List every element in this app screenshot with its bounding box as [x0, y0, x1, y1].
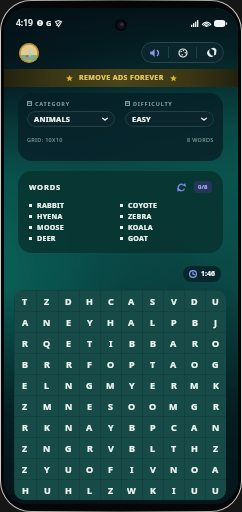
- button[interactable]: M: [163, 395, 184, 416]
- button[interactable]: C: [100, 290, 121, 311]
- button[interactable]: 1:46: [183, 266, 221, 282]
- button[interactable]: H: [79, 290, 100, 311]
- button[interactable]: P: [142, 416, 163, 437]
- button[interactable]: Z: [100, 479, 121, 500]
- button[interactable]: B: [142, 332, 163, 353]
- button[interactable]: Dark mode: [197, 42, 224, 63]
- button[interactable]: W: [121, 479, 142, 500]
- button[interactable]: Profile: [19, 43, 39, 63]
- button[interactable]: A: [121, 311, 142, 332]
- button[interactable]: R: [14, 332, 36, 353]
- button[interactable]: Q: [36, 332, 58, 353]
- button[interactable]: N: [58, 374, 79, 395]
- button[interactable]: A: [163, 332, 184, 353]
- button[interactable]: A: [79, 416, 100, 437]
- button[interactable]: B: [184, 311, 205, 332]
- button[interactable]: Theme: [169, 42, 196, 63]
- button[interactable]: H: [58, 479, 79, 500]
- button[interactable]: Y: [121, 374, 142, 395]
- button[interactable]: P: [121, 353, 142, 374]
- button[interactable]: B: [121, 332, 142, 353]
- button[interactable]: I: [121, 458, 142, 479]
- button[interactable]: U: [58, 458, 79, 479]
- button[interactable]: O: [100, 353, 121, 374]
- button[interactable]: A: [184, 416, 205, 437]
- button[interactable]: S: [100, 395, 121, 416]
- button[interactable]: B: [121, 416, 142, 437]
- button[interactable]: R: [163, 374, 184, 395]
- button[interactable]: Y: [36, 458, 58, 479]
- button[interactable]: G: [79, 374, 100, 395]
- button[interactable]: L: [79, 479, 100, 500]
- button[interactable]: V: [100, 437, 121, 458]
- button[interactable]: U: [36, 479, 58, 500]
- button[interactable]: EASY: [125, 111, 214, 127]
- button[interactable]: Z: [36, 290, 58, 311]
- button[interactable]: A: [205, 458, 226, 479]
- button[interactable]: ANIMALS: [27, 111, 115, 127]
- button[interactable]: T: [142, 353, 163, 374]
- button[interactable]: R: [58, 353, 79, 374]
- button[interactable]: G: [205, 353, 226, 374]
- button[interactable]: K: [205, 374, 226, 395]
- button[interactable]: E: [58, 311, 79, 332]
- button[interactable]: A: [121, 290, 142, 311]
- button[interactable]: MOOSE: [29, 222, 120, 233]
- button[interactable]: K: [36, 416, 58, 437]
- button[interactable]: F: [100, 458, 121, 479]
- button[interactable]: U: [184, 479, 205, 500]
- button[interactable]: G: [58, 437, 79, 458]
- button[interactable]: F: [79, 353, 100, 374]
- button[interactable]: N: [163, 458, 184, 479]
- button[interactable]: O: [121, 395, 142, 416]
- button[interactable]: V: [163, 290, 184, 311]
- button[interactable]: R: [36, 353, 58, 374]
- button[interactable]: R: [205, 395, 226, 416]
- button[interactable]: Z: [14, 458, 36, 479]
- button[interactable]: Shuffle words: [175, 181, 187, 193]
- button[interactable]: N: [205, 416, 226, 437]
- button[interactable]: I: [163, 479, 184, 500]
- button[interactable]: DEER: [29, 233, 120, 244]
- button[interactable]: O: [142, 395, 163, 416]
- button[interactable]: N: [36, 311, 58, 332]
- button[interactable]: D: [58, 290, 79, 311]
- button[interactable]: Sound: [141, 42, 168, 63]
- button[interactable]: T: [79, 332, 100, 353]
- button[interactable]: M: [100, 374, 121, 395]
- button[interactable]: E: [58, 332, 79, 353]
- button[interactable]: Y: [79, 311, 100, 332]
- button[interactable]: E: [14, 374, 36, 395]
- button[interactable]: J: [205, 311, 226, 332]
- button[interactable]: HYENA: [29, 211, 120, 222]
- button[interactable]: H: [100, 311, 121, 332]
- button[interactable]: U: [205, 479, 226, 500]
- button[interactable]: R: [184, 332, 205, 353]
- button[interactable]: M: [36, 395, 58, 416]
- button[interactable]: KOALA: [120, 222, 212, 233]
- button[interactable]: A: [163, 353, 184, 374]
- button[interactable]: GOAT: [120, 233, 212, 244]
- button[interactable]: T: [163, 437, 184, 458]
- button[interactable]: L: [142, 437, 163, 458]
- button[interactable]: R: [14, 416, 36, 437]
- button[interactable]: N: [36, 437, 58, 458]
- button[interactable]: 0/8: [194, 181, 212, 193]
- button[interactable]: H: [14, 479, 36, 500]
- button[interactable]: I: [100, 332, 121, 353]
- button[interactable]: O: [205, 332, 226, 353]
- button[interactable]: ZEBRA: [120, 211, 212, 222]
- button[interactable]: R: [79, 437, 100, 458]
- button[interactable]: E: [79, 395, 100, 416]
- button[interactable]: O: [184, 353, 205, 374]
- button[interactable]: Y: [100, 416, 121, 437]
- button[interactable]: N: [58, 395, 79, 416]
- button[interactable]: N: [58, 416, 79, 437]
- button[interactable]: REMOVE ADS FOREVER: [4, 69, 238, 87]
- button[interactable]: T: [14, 290, 36, 311]
- button[interactable]: A: [14, 311, 36, 332]
- button[interactable]: RABBIT: [29, 200, 120, 211]
- button[interactable]: D: [184, 290, 205, 311]
- button[interactable]: O: [79, 458, 100, 479]
- button[interactable]: H: [184, 437, 205, 458]
